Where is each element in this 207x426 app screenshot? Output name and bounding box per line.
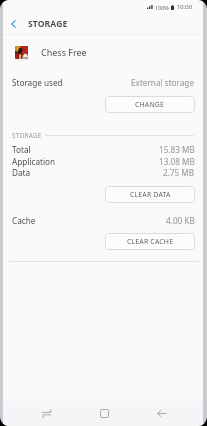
staticText: STORAGE bbox=[12, 131, 42, 139]
button[interactable]: Recent apps bbox=[34, 401, 58, 426]
button[interactable]: Back bbox=[149, 401, 173, 426]
staticText: 100% bbox=[155, 4, 169, 11]
staticText: CHANGE bbox=[135, 100, 165, 109]
staticText: CLEAR DATA bbox=[130, 190, 171, 199]
staticText: External storage bbox=[131, 77, 195, 88]
staticText: STORAGE bbox=[28, 18, 68, 30]
staticText: 10:00 bbox=[177, 3, 193, 11]
staticText: CLEAR CACHE bbox=[127, 237, 174, 246]
staticText: Data bbox=[12, 167, 31, 178]
staticText: 15.83 MB bbox=[159, 144, 195, 155]
staticText: Cache bbox=[12, 215, 36, 226]
staticText: Chess Free bbox=[41, 46, 87, 58]
staticText: Storage used bbox=[12, 77, 63, 88]
button[interactable]: CLEAR CACHE bbox=[105, 233, 195, 250]
staticText: Application bbox=[12, 156, 56, 167]
staticText: Total bbox=[12, 144, 31, 155]
staticText: 4.00 KB bbox=[166, 215, 195, 226]
button[interactable]: CHANGE bbox=[105, 96, 195, 113]
button[interactable]: Home bbox=[92, 401, 116, 426]
staticText: 2.75 MB bbox=[163, 167, 195, 178]
staticText: 13.08 MB bbox=[159, 156, 195, 167]
button[interactable]: Navigate up bbox=[3, 14, 23, 34]
button[interactable]: CLEAR DATA bbox=[105, 186, 195, 203]
